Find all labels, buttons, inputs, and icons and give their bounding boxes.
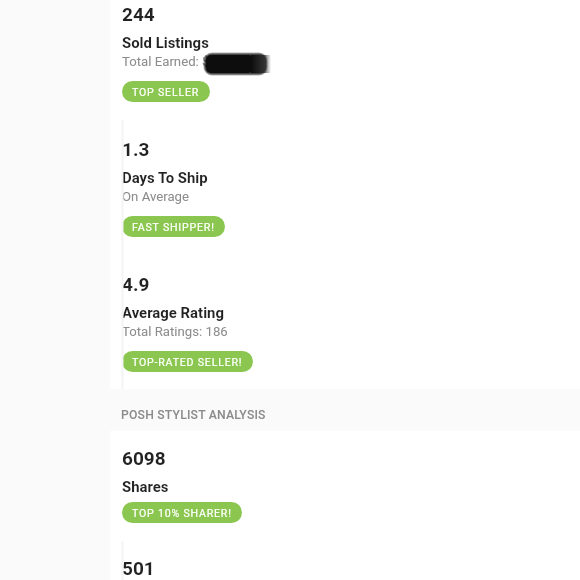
staticText: 6098 bbox=[122, 447, 166, 469]
button[interactable]: FAST SHIPPER! bbox=[122, 216, 225, 237]
staticText: On Average bbox=[122, 189, 189, 204]
staticText: FAST SHIPPER! bbox=[132, 221, 215, 233]
staticText: 244 bbox=[122, 3, 155, 25]
staticText: Average Rating bbox=[122, 304, 224, 321]
staticText: TOP 10% SHARER! bbox=[132, 507, 232, 519]
button[interactable]: 244 bbox=[110, 0, 580, 135]
staticText: Total Ratings: 186 bbox=[122, 324, 228, 339]
staticText: Sold Listings bbox=[122, 34, 209, 51]
staticText: Total Earned: $ bbox=[122, 54, 210, 69]
staticText: 1.3 bbox=[122, 138, 150, 160]
button[interactable]: TOP SELLER bbox=[122, 81, 210, 102]
button[interactable]: TOP 10% SHARER! bbox=[122, 502, 242, 523]
staticText: 501 bbox=[122, 557, 155, 579]
staticText: TOP-RATED SELLER! bbox=[132, 356, 243, 368]
staticText: Shares bbox=[122, 478, 169, 495]
button[interactable]: 4.9 bbox=[110, 270, 580, 389]
staticText: 4.9 bbox=[122, 273, 150, 295]
button[interactable]: 501 bbox=[110, 541, 580, 580]
staticText: POSH STYLIST ANALYSIS bbox=[121, 408, 266, 422]
button[interactable]: TOP-RATED SELLER! bbox=[122, 351, 253, 372]
button[interactable]: 1.3 bbox=[110, 135, 580, 270]
staticText: TOP SELLER bbox=[132, 86, 200, 98]
staticText: Days To Ship bbox=[122, 169, 208, 186]
button[interactable]: 6098 bbox=[110, 431, 580, 541]
